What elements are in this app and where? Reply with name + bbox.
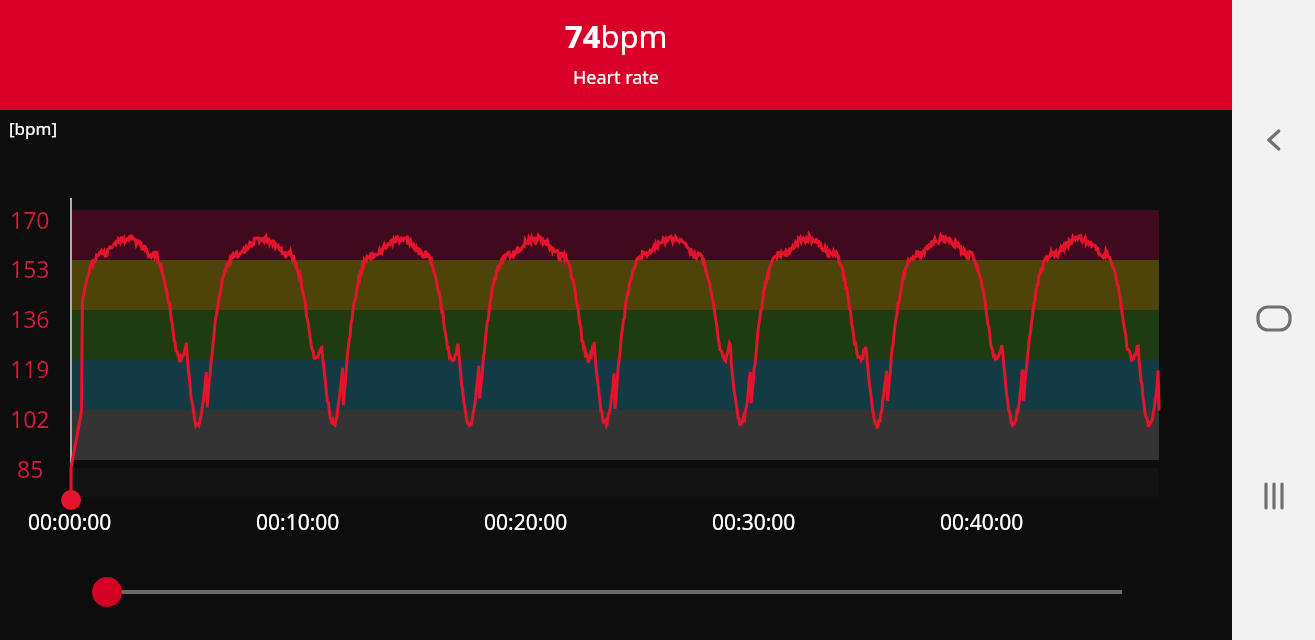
staticText: 102 <box>10 403 50 434</box>
staticText: 119 <box>10 353 50 384</box>
button[interactable]: Back <box>1232 95 1315 185</box>
staticText: 00:20:00 <box>484 508 568 537</box>
staticText: 136 <box>10 303 50 334</box>
button[interactable]: Home <box>1232 273 1315 363</box>
button[interactable]: Recent apps <box>1232 451 1315 541</box>
staticText: [bpm] <box>9 117 57 140</box>
staticText: 00:30:00 <box>712 508 796 537</box>
staticText: 00:00:00 <box>28 508 112 537</box>
staticText: Heart rate <box>573 65 660 90</box>
staticText: 85 <box>17 453 44 484</box>
button[interactable]: Playback position <box>80 568 1140 616</box>
staticText: 153 <box>10 253 50 284</box>
staticText: 00:10:00 <box>256 508 340 537</box>
button[interactable]: 74bpm <box>0 0 1232 110</box>
staticText: 00:40:00 <box>940 508 1024 537</box>
staticText: 170 <box>10 204 50 235</box>
staticText: 74bpm <box>565 15 668 57</box>
